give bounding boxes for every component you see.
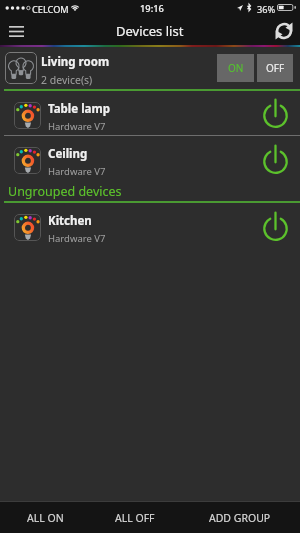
button[interactable]: Toggle power (260, 98, 290, 128)
staticText: Living room (41, 54, 110, 70)
staticText: Hardware V7 (48, 165, 106, 178)
staticText: Ungrouped devices (8, 183, 122, 200)
staticText: Devices list (116, 22, 184, 40)
staticText: ON (228, 61, 244, 75)
staticText: Ceiling (48, 146, 88, 162)
staticText: 19:16 (140, 2, 164, 15)
staticText: Table lamp (48, 101, 110, 117)
staticText: Hardware V7 (48, 232, 106, 245)
staticText: OFF (266, 61, 285, 75)
button[interactable]: Toggle power (260, 211, 290, 241)
button[interactable]: ALL ON (0, 502, 90, 533)
staticText: Kitchen (48, 213, 92, 229)
staticText: ALL ON (27, 511, 64, 525)
button[interactable]: Menu (3, 18, 29, 44)
button[interactable]: Toggle power (260, 144, 290, 174)
staticText: ALL OFF (115, 511, 155, 525)
button[interactable]: Ceiling (0, 136, 300, 181)
staticText: ADD GROUP (209, 511, 271, 525)
button[interactable]: ON (217, 54, 254, 82)
button[interactable]: Table lamp (0, 91, 300, 135)
button[interactable]: Living room (0, 47, 300, 89)
staticText: 2 device(s) (41, 73, 93, 87)
staticText: Hardware V7 (48, 120, 106, 133)
staticText: 36% (257, 3, 276, 16)
button[interactable]: Refresh (271, 18, 297, 44)
button[interactable]: Ungrouped devices (0, 181, 300, 201)
button[interactable]: Kitchen (0, 203, 300, 248)
button[interactable]: ADD GROUP (180, 502, 300, 533)
button[interactable]: ALL OFF (90, 502, 180, 533)
button[interactable]: OFF (257, 54, 293, 82)
staticText: CELCOM (32, 3, 69, 16)
